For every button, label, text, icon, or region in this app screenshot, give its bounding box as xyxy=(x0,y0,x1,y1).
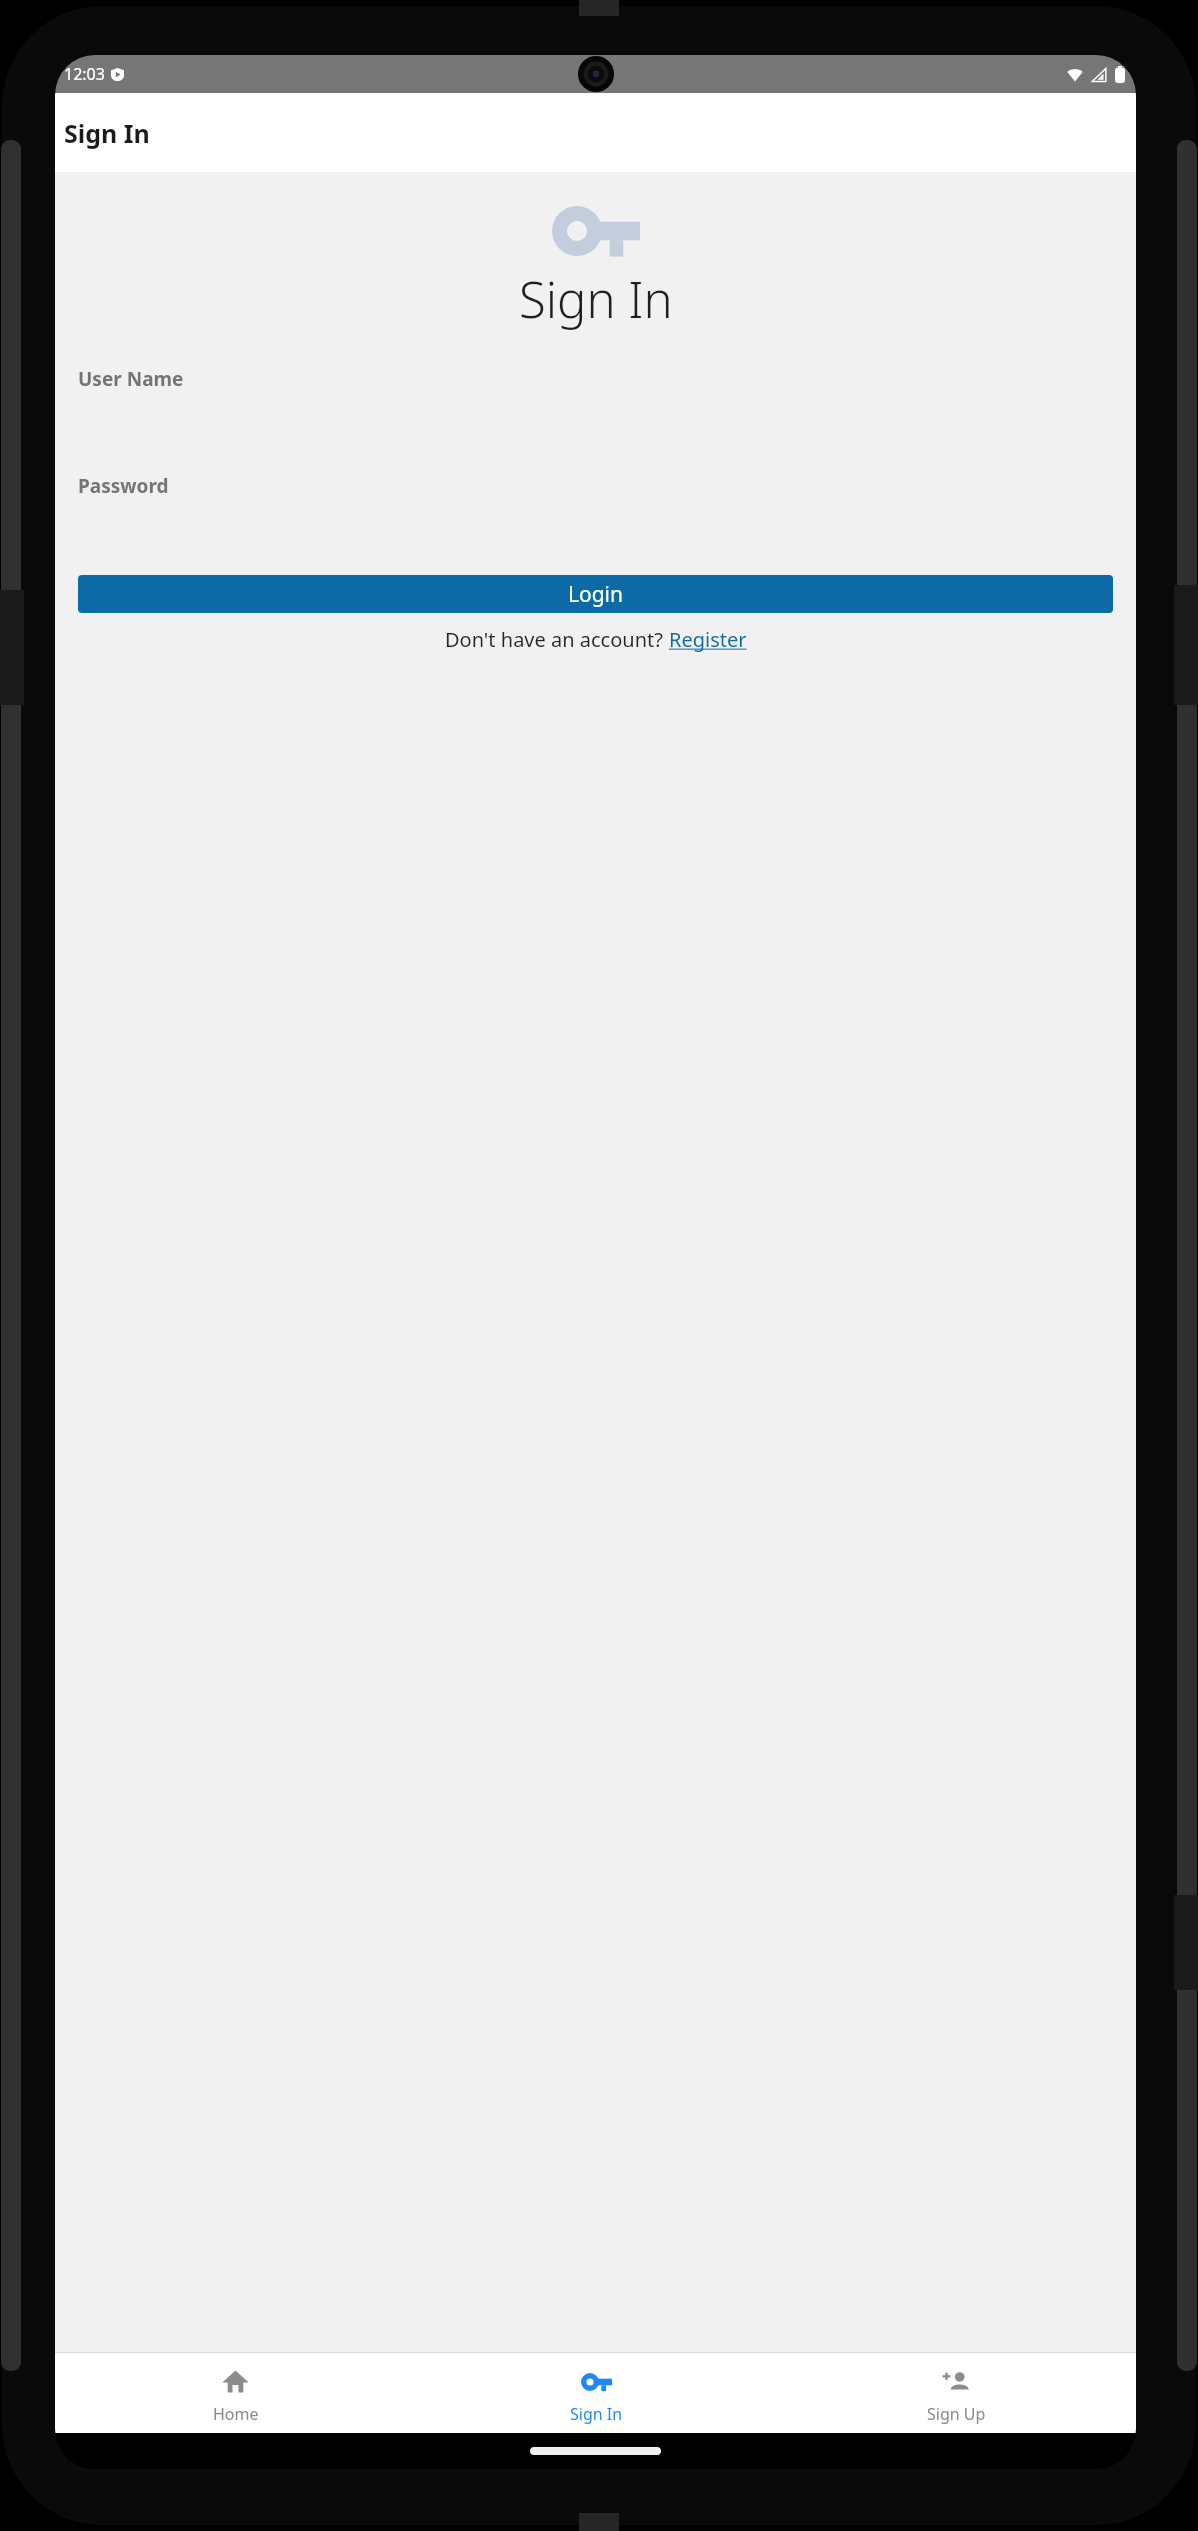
staticText: User Name xyxy=(78,366,184,392)
button[interactable]: User Name xyxy=(78,366,1113,432)
staticText: Sign In xyxy=(519,266,673,333)
staticText: Password xyxy=(78,473,169,499)
staticText: Login xyxy=(568,580,624,609)
staticText: Register xyxy=(669,626,747,653)
staticText: Don't have an account? xyxy=(445,626,669,653)
button[interactable]: Login xyxy=(78,575,1113,613)
button[interactable]: Home xyxy=(55,2353,416,2433)
staticText: 12:03 xyxy=(64,63,105,85)
button[interactable]: Sign Up xyxy=(776,2353,1136,2433)
staticText: Home xyxy=(213,2403,259,2425)
staticText: Sign In xyxy=(570,2403,623,2425)
staticText: Sign In xyxy=(64,116,150,150)
button[interactable]: Register xyxy=(669,626,747,653)
staticText: Sign Up xyxy=(927,2403,986,2425)
button[interactable]: Password xyxy=(78,473,1113,539)
button[interactable]: Sign In xyxy=(416,2353,776,2433)
